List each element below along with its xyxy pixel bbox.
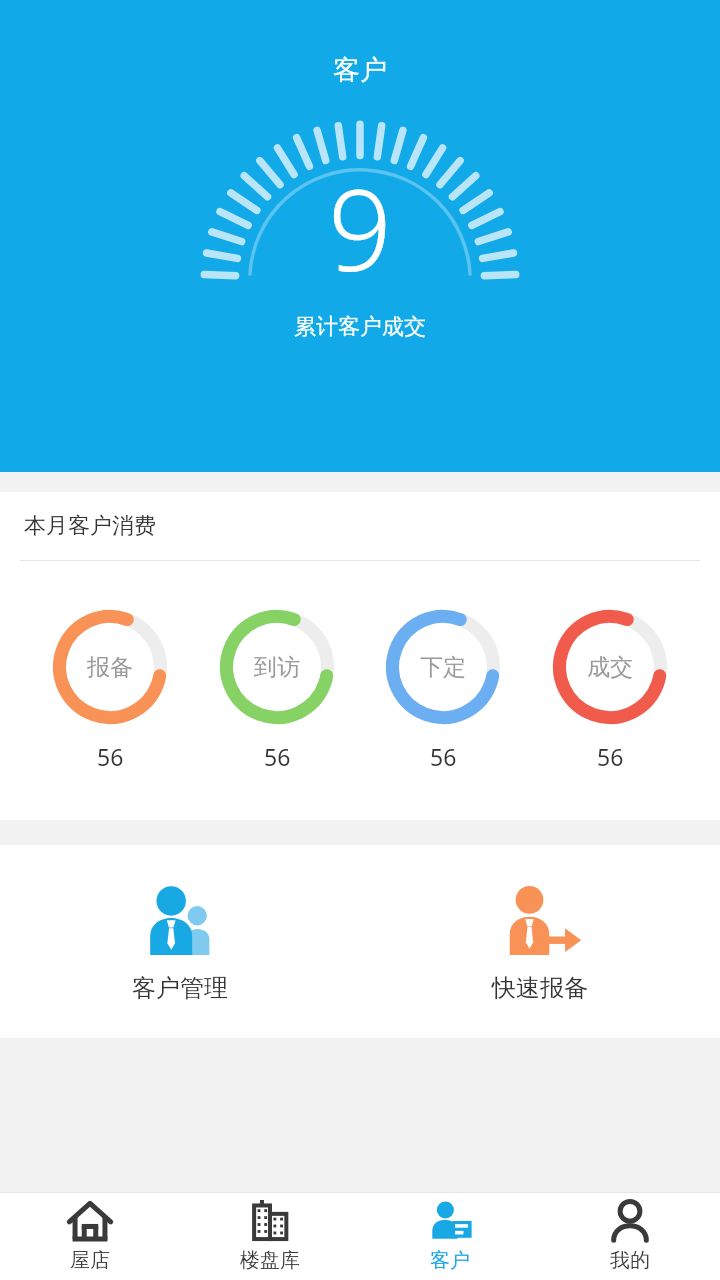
button[interactable]: 报备 — [44, 603, 176, 778]
button[interactable]: 成交 — [544, 603, 676, 778]
staticText: 下定 — [420, 653, 466, 682]
staticText: 我的 — [610, 1248, 650, 1273]
staticText: 客户管理 — [132, 973, 228, 1003]
staticText: 56 — [597, 741, 624, 772]
button[interactable]: 客户管理 — [0, 845, 360, 1038]
staticText: 楼盘库 — [240, 1248, 300, 1273]
staticText: 9 — [328, 151, 392, 299]
staticText: 成交 — [587, 653, 633, 682]
staticText: 屋店 — [70, 1248, 110, 1273]
staticText: 到访 — [254, 653, 300, 682]
staticText: 客户 — [430, 1248, 470, 1273]
staticText: 56 — [264, 741, 291, 772]
button[interactable]: 到访 — [211, 603, 343, 778]
staticText: 56 — [430, 741, 457, 772]
staticText: 客户 — [333, 53, 387, 87]
staticText: 本月客户消费 — [24, 512, 156, 540]
button[interactable]: 下定 — [377, 603, 509, 778]
button[interactable]: 客户 — [360, 1193, 540, 1280]
button[interactable]: 楼盘库 — [180, 1193, 360, 1280]
staticText: 快速报备 — [492, 973, 588, 1003]
staticText: 56 — [97, 741, 124, 772]
button[interactable]: 屋店 — [0, 1193, 180, 1280]
button[interactable]: 我的 — [540, 1193, 720, 1280]
staticText: 报备 — [87, 653, 133, 682]
staticText: 累计客户成交 — [294, 313, 426, 341]
button[interactable]: 快速报备 — [360, 845, 720, 1038]
